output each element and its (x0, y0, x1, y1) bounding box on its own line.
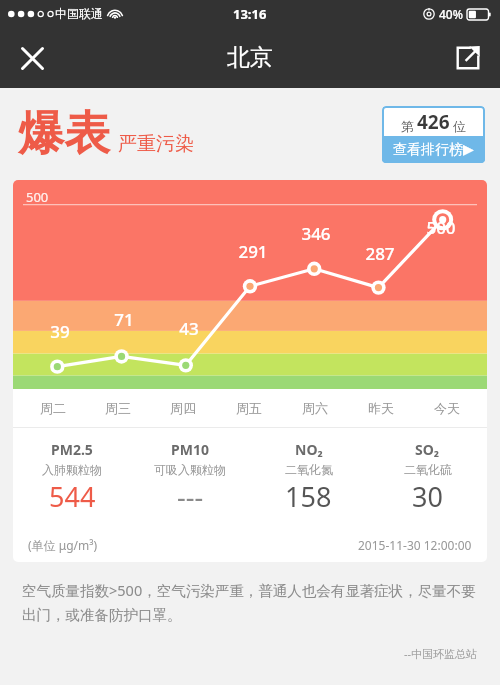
staticText: 入肺颗粒物 (42, 462, 102, 477)
button[interactable]: PM10 (131, 440, 249, 515)
staticText: 查看排行榜▶ (393, 141, 474, 159)
staticText: 昨天 (368, 400, 394, 416)
staticText: 空气质量指数>500，空气污染严重，普通人也会有显著症状，尽量不要出门，或准备防… (22, 580, 478, 624)
staticText: PM10 (171, 440, 209, 459)
staticText: 北京 (227, 43, 273, 72)
button[interactable]: Share (448, 38, 488, 78)
staticText: 严重污染 (118, 132, 194, 156)
staticText: 周二 (40, 400, 66, 416)
staticText: 二氧化氮 (285, 462, 333, 477)
staticText: 291 (238, 240, 268, 263)
staticText: --中国环监总站 (404, 646, 478, 661)
staticText: 可吸入颗粒物 (154, 462, 226, 477)
staticText: 39 (50, 320, 70, 343)
staticText: 426 (417, 109, 450, 135)
staticText: 周四 (170, 400, 196, 416)
button[interactable]: SO₂ (368, 440, 487, 515)
staticText: 周五 (236, 400, 262, 416)
staticText: 中国联通 (55, 6, 103, 21)
staticText: 爆表 (18, 105, 110, 163)
staticText: 287 (365, 242, 395, 265)
staticText: 周六 (302, 400, 328, 416)
button[interactable]: NO₂ (249, 440, 368, 515)
staticText: 今天 (434, 400, 460, 416)
staticText: 30 (412, 478, 443, 515)
staticText: 位 (453, 118, 466, 134)
staticText: 13:16 (233, 5, 267, 23)
staticText: NO₂ (295, 440, 323, 459)
staticText: 346 (301, 222, 331, 245)
staticText: 500 (426, 216, 456, 239)
staticText: --- (177, 478, 204, 515)
staticText: 43 (179, 317, 199, 340)
button[interactable]: PM2.5 (13, 440, 131, 515)
staticText: 71 (114, 308, 134, 331)
staticText: (单位 μg/m³) (28, 537, 98, 553)
staticText: 40% (439, 6, 463, 22)
button[interactable]: Close (12, 38, 52, 78)
staticText: 158 (285, 478, 332, 515)
staticText: 第 (401, 118, 414, 134)
staticText: PM2.5 (51, 440, 93, 459)
staticText: 周三 (105, 400, 131, 416)
staticText: 500 (26, 188, 49, 206)
staticText: SO₂ (415, 440, 440, 459)
button[interactable]: 第 (382, 106, 485, 163)
staticText: 二氧化硫 (404, 462, 452, 477)
staticText: 544 (49, 478, 96, 515)
staticText: 2015-11-30 12:00:00 (358, 537, 472, 553)
